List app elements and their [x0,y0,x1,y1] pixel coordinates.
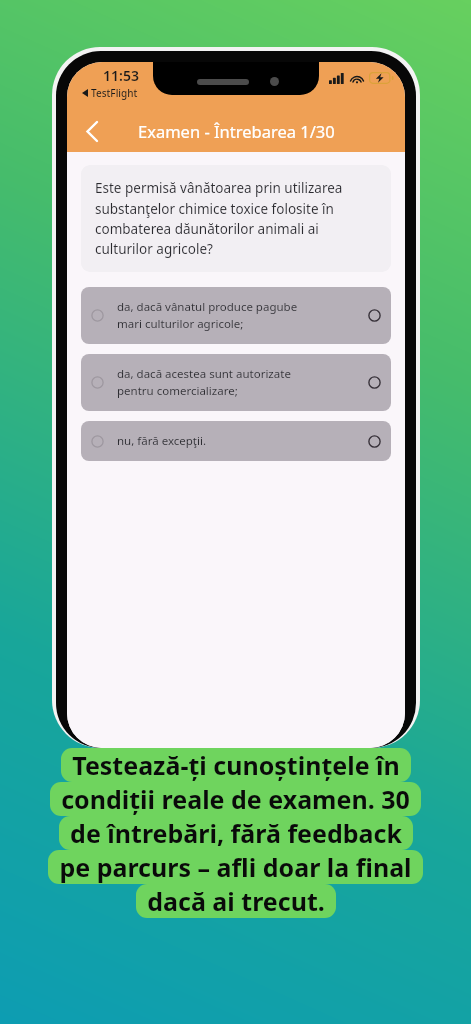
staticText: de întrebări, fără feedback [70,816,402,850]
staticText: Este permisă vânătoarea prin utilizarea … [95,179,377,258]
staticText: dacă ai trecut. [147,884,325,918]
button[interactable]: Este permisă vânătoarea prin utilizarea … [81,165,391,272]
button[interactable]: Back [73,113,109,149]
staticText: Examen - Întrebarea 1/30 [138,120,335,142]
staticText: da, dacă acestea sunt autorizate pentru … [117,366,360,399]
staticText: 11:53 [103,66,139,85]
staticText: da, dacă vânatul produce pagube mari cul… [117,299,360,332]
staticText: pe parcurs – afli doar la final [59,850,412,884]
staticText: TestFlight [91,86,138,100]
button[interactable]: nu, fără excepţii. [81,421,391,461]
staticText: condiții reale de examen. 30 [61,782,410,816]
button[interactable]: da, dacă acestea sunt autorizate pentru … [81,354,391,411]
staticText: nu, fără excepţii. [117,433,360,449]
button[interactable]: da, dacă vânatul produce pagube mari cul… [81,287,391,344]
staticText: Testează-ți cunoștințele în [72,748,400,782]
